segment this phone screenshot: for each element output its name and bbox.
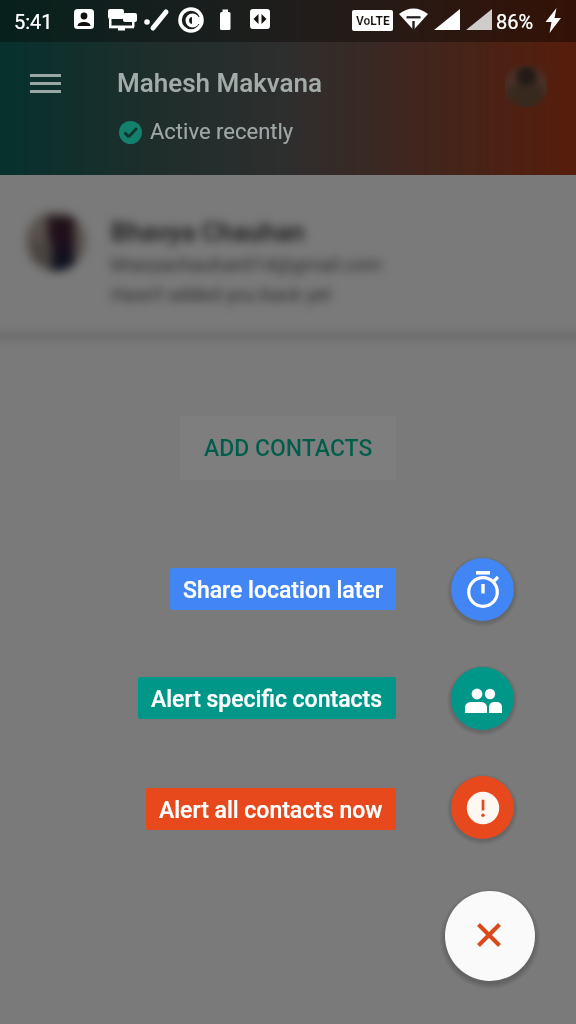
button[interactable]: Alert all contacts now: [146, 788, 396, 830]
button[interactable]: Share location later: [451, 558, 514, 621]
button[interactable]: Share location later: [170, 568, 396, 610]
staticText: 86%: [496, 10, 534, 33]
staticText: Bhavya Chauhan: [111, 217, 305, 247]
staticText: bhavyachauhan014@gmail.com: [111, 253, 382, 275]
staticText: Alert all contacts now: [159, 797, 383, 824]
staticText: Alert specific contacts: [151, 686, 383, 713]
button[interactable]: Open navigation drawer: [16, 54, 74, 112]
staticText: Share location later: [183, 577, 383, 604]
staticText: Mahesh Makvana: [117, 68, 322, 98]
staticText: VoLTE: [356, 14, 390, 28]
button[interactable]: Close menu: [445, 891, 535, 981]
button[interactable]: Alert specific contacts: [138, 677, 396, 719]
button[interactable]: Alert all contacts now: [451, 776, 514, 839]
staticText: ADD CONTACTS: [204, 435, 373, 462]
staticText: 5:41: [14, 10, 53, 33]
staticText: Hasn't added you back yet: [111, 283, 332, 305]
button[interactable]: Profile: [502, 62, 550, 110]
button[interactable]: ADD CONTACTS: [180, 416, 396, 480]
staticText: Active recently: [150, 119, 294, 145]
button[interactable]: Alert specific contacts: [451, 667, 514, 730]
